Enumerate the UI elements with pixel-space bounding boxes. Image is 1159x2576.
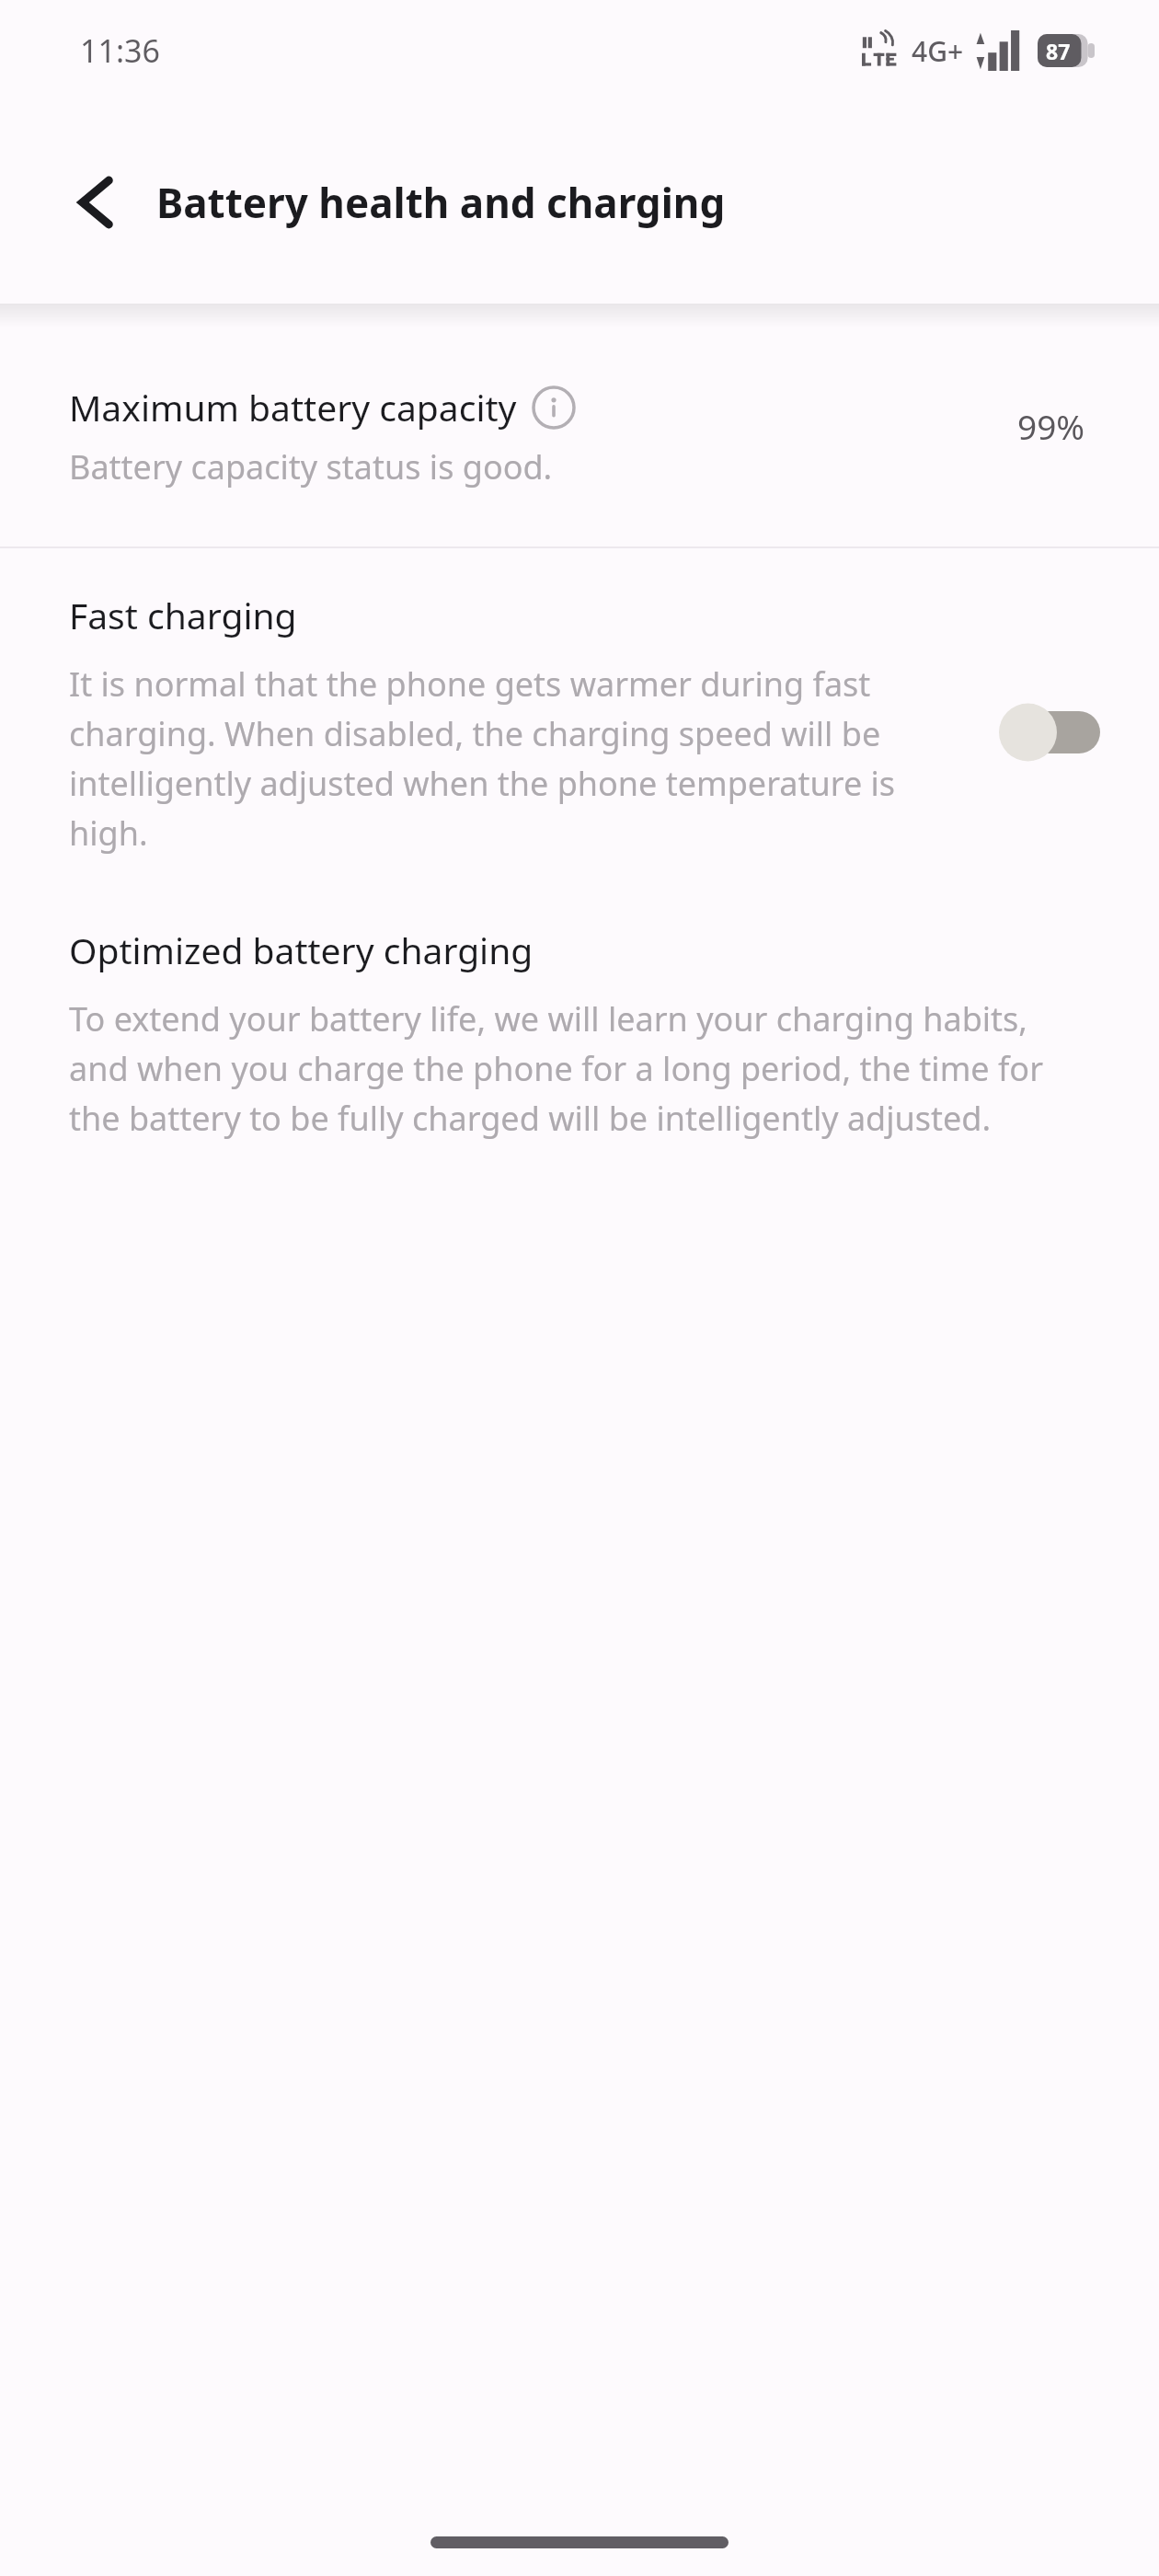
staticText: Battery capacity status is good.: [69, 444, 553, 489]
staticText: 87: [1046, 37, 1071, 65]
staticText: It is normal that the phone gets warmer …: [69, 661, 982, 856]
staticText: Fast charging: [69, 591, 297, 639]
button[interactable]: Maximum battery capacity: [0, 328, 1159, 546]
staticText: Maximum battery capacity: [69, 383, 517, 431]
button[interactable]: Fast charging: [0, 548, 1159, 874]
staticText: 99%: [1017, 403, 1085, 449]
staticText: 11:36: [80, 29, 160, 72]
button[interactable]: Optimized battery charging: [0, 874, 1159, 1178]
button[interactable]: Fast charging toggle: [999, 703, 1100, 762]
staticText: 4G+: [912, 32, 964, 70]
staticText: To extend your battery life, we will lea…: [69, 996, 1076, 1141]
staticText: Optimized battery charging: [69, 926, 534, 974]
button[interactable]: Back: [52, 158, 140, 247]
staticText: Battery health and charging: [156, 175, 726, 230]
